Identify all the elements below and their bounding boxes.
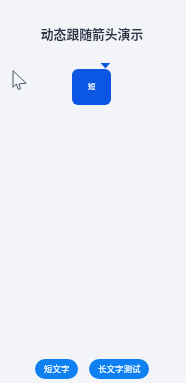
staticText: 长文字测试: [98, 362, 141, 374]
staticText: 短: [88, 80, 96, 91]
staticText: 动态跟随箭头演示: [0, 24, 185, 43]
other: Pointer: [12, 69, 28, 91]
button[interactable]: 短: [72, 69, 111, 105]
staticText: 短文字: [44, 362, 70, 374]
button[interactable]: 短文字: [35, 359, 78, 379]
button[interactable]: 长文字测试: [89, 359, 149, 379]
